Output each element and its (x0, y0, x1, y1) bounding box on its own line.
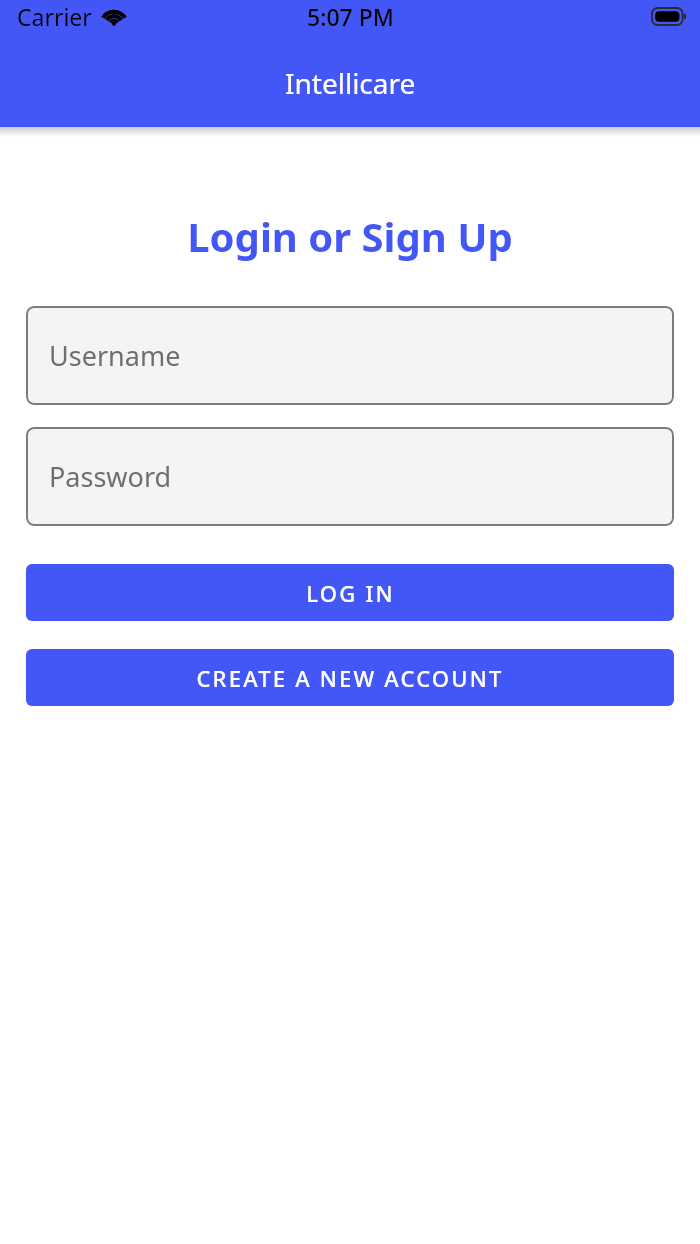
button[interactable]: Username (26, 306, 674, 405)
staticText: LOG IN (306, 578, 395, 608)
staticText: 5:07 PM (307, 1, 394, 32)
button[interactable]: Password (26, 427, 674, 526)
staticText: Password (49, 458, 172, 495)
other: Battery full (652, 8, 686, 25)
staticText: Carrier (17, 1, 92, 32)
button[interactable]: CREATE A NEW ACCOUNT (26, 649, 674, 706)
other: Wi-Fi signal (101, 7, 127, 26)
button[interactable]: LOG IN (26, 564, 674, 621)
staticText: CREATE A NEW ACCOUNT (196, 663, 504, 693)
staticText: Login or Sign Up (0, 209, 700, 263)
staticText: Intellicare (285, 64, 416, 102)
staticText: Username (49, 337, 181, 374)
